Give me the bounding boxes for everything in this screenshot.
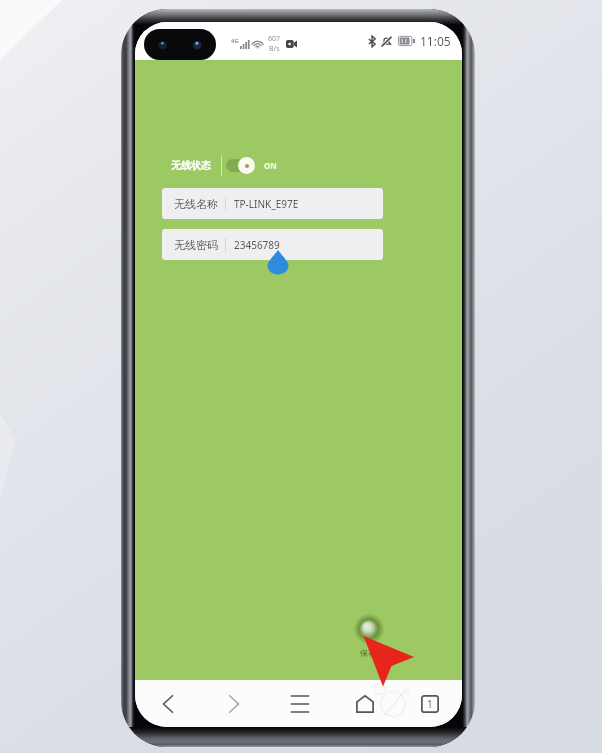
staticText: 无线名称 (174, 197, 218, 211)
button[interactable]: Tabs (397, 680, 462, 727)
staticText: ON (264, 160, 277, 171)
button[interactable]: Menu (267, 680, 332, 727)
staticText: 23456789 (234, 238, 280, 252)
staticText: 保存 (360, 648, 376, 658)
button[interactable]: 无线名称 (162, 188, 383, 219)
button[interactable]: 无线密码 (162, 229, 383, 260)
button[interactable]: Forward (201, 680, 267, 727)
staticText: 607 (268, 34, 281, 44)
staticText: 无线状态 (171, 159, 211, 172)
staticText: 1 (427, 697, 433, 711)
staticText: 11:05 (420, 33, 451, 49)
button[interactable]: Home (332, 680, 397, 727)
button[interactable]: Back (135, 680, 201, 727)
button[interactable]: 保存 (353, 614, 385, 660)
staticText: 无线密码 (174, 238, 218, 252)
staticText: B/s (269, 44, 280, 54)
button[interactable]: Wireless on/off switch (226, 157, 255, 174)
staticText: 4G (231, 37, 239, 45)
staticText: TP-LINK_E97E (234, 197, 299, 211)
